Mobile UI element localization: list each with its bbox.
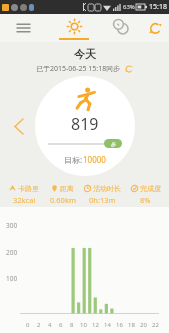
staticText: 0.60km — [50, 195, 76, 205]
staticText: 8% — [140, 195, 151, 205]
staticText: 100 — [6, 274, 18, 283]
staticText: 200 — [6, 248, 18, 257]
staticText: 0 — [26, 321, 30, 329]
staticText: 步 — [111, 141, 116, 147]
staticText: 10000 — [83, 154, 106, 165]
staticText: 12 — [92, 321, 99, 329]
staticText: 819 — [71, 113, 99, 135]
button[interactable]: 819 — [35, 76, 135, 176]
staticText: 10 — [80, 321, 87, 329]
staticText: 18 — [128, 321, 135, 329]
button[interactable]: 完成度 — [125, 184, 166, 205]
staticText: 14 — [104, 321, 111, 329]
button[interactable]: 活动时长 — [80, 184, 125, 205]
staticText: 0h:13m — [89, 195, 116, 205]
staticText: 16 — [116, 321, 123, 329]
staticText: 目标: — [64, 154, 83, 165]
button[interactable]: Sleep — [102, 14, 142, 42]
staticText: 20 — [140, 321, 147, 329]
staticText: 已于2015-06-25 15:18同步 — [36, 64, 121, 74]
button[interactable]: Previous day — [8, 116, 28, 136]
staticText: 15:18 — [149, 2, 167, 12]
button[interactable]: 卡路里 — [3, 184, 45, 205]
button[interactable]: 距离 — [45, 184, 80, 205]
button[interactable]: Menu — [0, 14, 46, 42]
staticText: 32kcal — [13, 195, 36, 205]
staticText: 卡路里 — [18, 184, 39, 193]
staticText: 8 — [70, 321, 74, 329]
staticText: 完成度 — [140, 184, 161, 193]
staticText: 300 — [6, 221, 18, 230]
button[interactable]: Refresh — [125, 65, 133, 73]
staticText: 4 — [48, 321, 52, 329]
staticText: 今天 — [74, 47, 96, 61]
staticText: 2 — [37, 321, 41, 329]
staticText: 6 — [59, 321, 63, 329]
staticText: 63% — [123, 3, 135, 11]
button[interactable]: Sync — [142, 14, 169, 42]
staticText: 22 — [152, 321, 159, 329]
staticText: 活动时长 — [93, 184, 121, 193]
staticText: 距离 — [60, 184, 74, 193]
button[interactable]: Day activity — [46, 14, 102, 42]
